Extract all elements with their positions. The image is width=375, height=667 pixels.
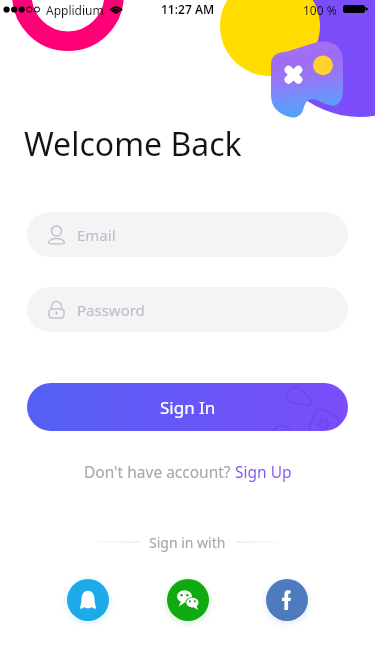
button[interactable]: Sign Up: [235, 461, 292, 482]
staticText: Sign Up: [235, 461, 292, 482]
staticText: Sign In: [160, 396, 216, 419]
staticText: Password: [77, 300, 145, 320]
button[interactable]: Email: [27, 212, 348, 257]
staticText: 11:27 AM: [161, 1, 215, 17]
button[interactable]: Sign In: [27, 383, 348, 431]
staticText: Email: [77, 225, 116, 245]
button[interactable]: Password: [27, 287, 348, 332]
button[interactable]: Sign in with Facebook: [266, 579, 308, 621]
staticText: 100 %: [303, 2, 337, 18]
staticText: Sign in with: [149, 533, 226, 552]
button[interactable]: Sign in with QQ: [67, 579, 109, 621]
staticText: Don't have account?: [84, 461, 235, 482]
button[interactable]: Sign in with WeChat: [167, 579, 209, 621]
staticText: Welcome Back: [24, 122, 242, 166]
staticText: Applidium: [46, 2, 104, 18]
